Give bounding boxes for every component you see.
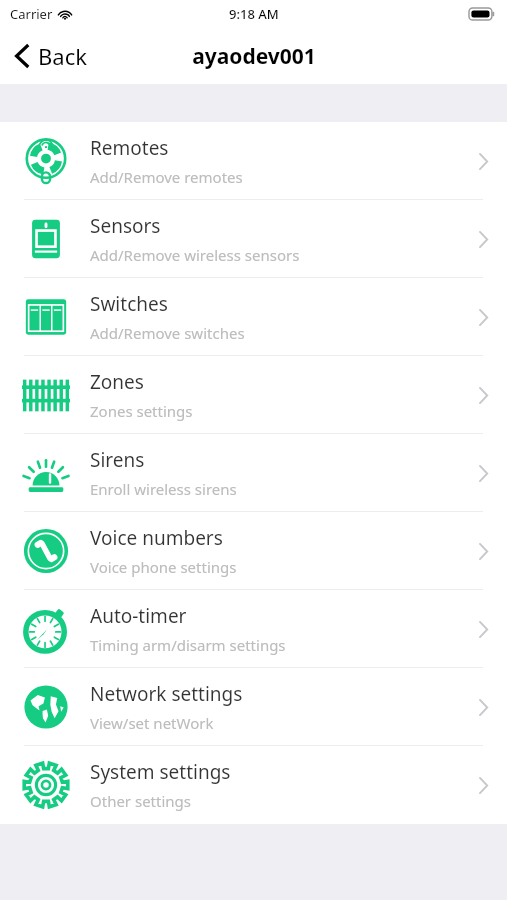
- staticText: Add/Remove remotes: [90, 167, 243, 187]
- button[interactable]: Remotes: [0, 122, 507, 200]
- staticText: Timing arm/disarm settings: [90, 635, 286, 655]
- staticText: Voice phone settings: [90, 557, 237, 577]
- button[interactable]: Zones: [0, 356, 507, 434]
- staticText: Enroll wireless sirens: [90, 479, 237, 499]
- staticText: Network settings: [90, 681, 243, 707]
- staticText: Remotes: [90, 135, 169, 161]
- button[interactable]: Voice numbers: [0, 512, 507, 590]
- staticText: Carrier: [10, 5, 53, 23]
- button[interactable]: Sirens: [0, 434, 507, 512]
- staticText: Zones: [90, 369, 144, 395]
- button[interactable]: Network settings: [0, 668, 507, 746]
- staticText: Auto-timer: [90, 603, 187, 629]
- staticText: Voice numbers: [90, 525, 223, 551]
- button[interactable]: Auto-timer: [0, 590, 507, 668]
- staticText: Sirens: [90, 447, 145, 473]
- staticText: Add/Remove switches: [90, 323, 245, 343]
- staticText: Other settings: [90, 791, 191, 811]
- staticText: Back: [38, 41, 87, 71]
- staticText: Sensors: [90, 213, 161, 239]
- staticText: 9:18 AM: [229, 5, 279, 23]
- button[interactable]: Sensors: [0, 200, 507, 278]
- staticText: Switches: [90, 291, 168, 317]
- button[interactable]: Switches: [0, 278, 507, 356]
- staticText: View/set netWork: [90, 713, 214, 733]
- staticText: Add/Remove wireless sensors: [90, 245, 300, 265]
- staticText: System settings: [90, 759, 231, 785]
- staticText: ayaodev001: [192, 42, 316, 71]
- button[interactable]: System settings: [0, 746, 507, 824]
- staticText: Zones settings: [90, 401, 193, 421]
- button[interactable]: Back: [0, 28, 103, 84]
